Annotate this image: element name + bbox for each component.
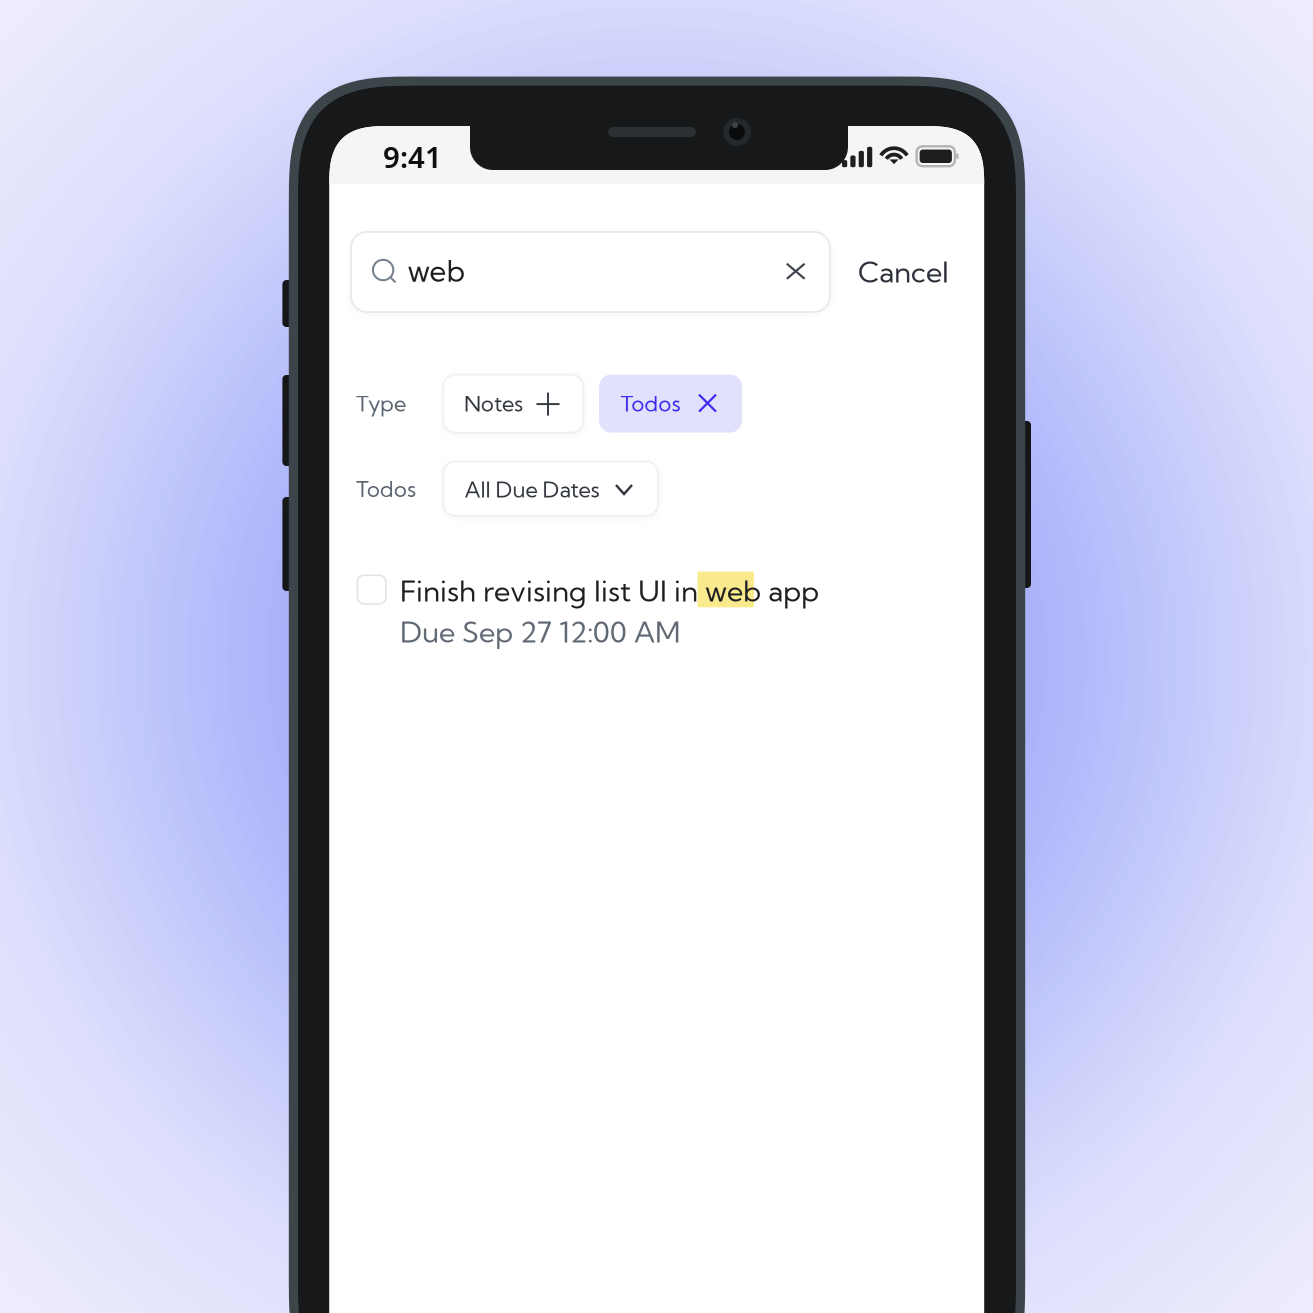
button[interactable]: Notes	[443, 375, 583, 433]
staticText: 9:41	[383, 137, 442, 176]
button[interactable]: All Due Dates	[443, 461, 658, 516]
button[interactable]: Complete todo	[357, 575, 386, 604]
button[interactable]: Cancel	[858, 247, 982, 297]
staticText: Finish revising list UI in web app	[400, 573, 819, 609]
button[interactable]: web	[351, 232, 830, 312]
staticText: web	[408, 253, 465, 289]
staticText: Todos	[620, 390, 680, 417]
staticText: Cancel	[858, 254, 949, 290]
button[interactable]: Todos	[599, 375, 742, 433]
staticText: Todos	[356, 475, 416, 502]
staticText: All Due Dates	[464, 476, 599, 503]
staticText: Type	[356, 390, 406, 417]
staticText: Due Sep 27 12:00 AM	[400, 614, 680, 650]
staticText: Notes	[464, 390, 523, 417]
